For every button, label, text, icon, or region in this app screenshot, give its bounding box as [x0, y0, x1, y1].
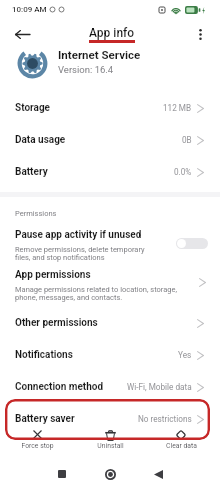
button[interactable]: Pause app activity toggle — [176, 238, 208, 249]
staticText: Manage permissions related to location, … — [15, 285, 177, 302]
button[interactable]: Pause app activity if unused — [0, 229, 220, 265]
staticText: 0.0% — [174, 167, 192, 177]
button[interactable]: Battery — [0, 157, 220, 187]
button[interactable]: More options — [193, 26, 207, 42]
staticText: Wi-Fi, Mobile data — [127, 382, 192, 392]
button[interactable]: Home — [100, 464, 120, 484]
button[interactable]: Storage — [0, 93, 220, 123]
button[interactable]: Force stop — [7, 427, 67, 452]
staticText: Storage — [15, 102, 51, 114]
staticText: Connection method — [15, 381, 104, 393]
button[interactable]: Recent apps — [52, 464, 72, 484]
staticText: Clear data — [166, 442, 197, 450]
staticText: Data usage — [15, 134, 66, 146]
staticText: Other permissions — [15, 317, 98, 329]
staticText: Pause app activity if unused — [15, 229, 142, 241]
staticText: Battery — [15, 166, 48, 178]
button[interactable]: App info — [89, 26, 135, 40]
button[interactable]: Battery saver — [0, 404, 220, 434]
staticText: 0B — [182, 135, 192, 145]
staticText: No restrictions — [138, 414, 192, 424]
button[interactable]: Clear data — [151, 427, 211, 452]
staticText: Uninstall — [97, 442, 124, 450]
button[interactable]: Other permissions — [0, 308, 220, 338]
button[interactable]: Data usage — [0, 125, 220, 155]
staticText: Battery saver — [15, 413, 75, 425]
button[interactable]: Back — [14, 27, 30, 42]
staticText: Notifications — [15, 349, 73, 361]
button[interactable]: Back — [148, 464, 168, 484]
button[interactable]: Notifications — [0, 340, 220, 370]
staticText: Version: 16.4 — [58, 64, 114, 75]
staticText: 112 MB — [163, 103, 192, 113]
button[interactable]: Uninstall — [80, 427, 140, 452]
button[interactable]: Connection method — [0, 372, 220, 402]
staticText: Remove permissions, delete temporary fil… — [15, 245, 145, 262]
staticText: Yes — [178, 350, 192, 360]
staticText: Internet Service — [58, 48, 141, 61]
staticText: 10:09 AM — [12, 5, 47, 14]
staticText: App permissions — [15, 269, 91, 281]
button[interactable]: App permissions — [0, 269, 220, 305]
staticText: Permissions — [15, 209, 57, 218]
staticText: Force stop — [21, 442, 54, 450]
